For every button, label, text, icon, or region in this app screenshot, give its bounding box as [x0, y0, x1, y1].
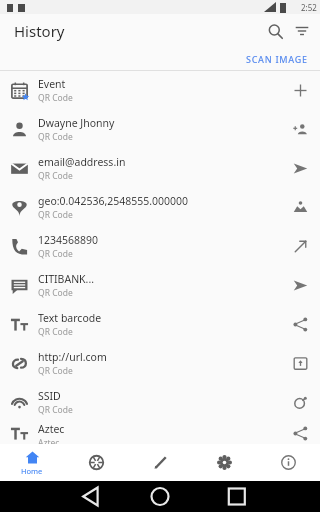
button[interactable]: PLUS	[280, 71, 320, 110]
staticText: QR Code	[38, 92, 73, 104]
button[interactable]: email@address.in	[0, 149, 320, 188]
button[interactable]: SEND	[280, 149, 320, 188]
button[interactable]: WIFI_ACT	[280, 383, 320, 422]
staticText: Dwayne Jhonny	[38, 116, 115, 130]
staticText: QR Code	[38, 209, 73, 221]
staticText: QR Code	[38, 326, 73, 338]
staticText: geo:0.042536,2548555.000000	[38, 194, 189, 208]
button[interactable]: Text barcode	[0, 305, 320, 344]
button[interactable]: Dwayne Jhonny	[0, 110, 320, 149]
button[interactable]: 1234568890	[0, 227, 320, 266]
staticText: Aztec	[38, 437, 60, 444]
staticText: email@address.in	[38, 155, 126, 169]
staticText: QR Code	[38, 248, 73, 260]
staticText: Aztec	[38, 422, 65, 436]
button[interactable]: Event	[0, 71, 320, 110]
button[interactable]: SHARE	[280, 422, 320, 444]
button[interactable]: Tab	[128, 444, 192, 481]
button[interactable]: http://url.com	[0, 344, 320, 383]
button[interactable]: SCAN IMAGE	[234, 50, 320, 68]
staticText: http://url.com	[38, 350, 107, 364]
button[interactable]: SEND	[280, 266, 320, 305]
button[interactable]: Tab	[64, 444, 128, 481]
staticText: QR Code	[38, 404, 73, 416]
staticText: History	[14, 21, 260, 41]
button[interactable]: ARROW	[280, 227, 320, 266]
button[interactable]: geo:0.042536,2548555.000000	[0, 188, 320, 227]
button[interactable]: SHARE	[280, 305, 320, 344]
button[interactable]: Home	[0, 444, 64, 481]
staticText: QR Code	[38, 287, 73, 299]
staticText: 1234568890	[38, 233, 99, 247]
staticText: 2:52	[301, 2, 317, 13]
button[interactable]: OPEN	[280, 344, 320, 383]
button[interactable]: Tab	[192, 444, 256, 481]
staticText: SSID	[38, 389, 61, 403]
staticText: SCAN IMAGE	[246, 53, 308, 65]
staticText: QR Code	[38, 131, 73, 143]
button[interactable]: CITIBANK...	[0, 266, 320, 305]
button[interactable]: ADD_PERSON	[280, 110, 320, 149]
button[interactable]: MAP	[280, 188, 320, 227]
staticText: QR Code	[38, 365, 73, 377]
button[interactable]: SSID	[0, 383, 320, 422]
button[interactable]: Aztec	[0, 422, 320, 444]
button[interactable]: Filter	[290, 16, 314, 46]
staticText: QR Code	[38, 170, 73, 182]
staticText: Text barcode	[38, 311, 102, 325]
button[interactable]: Search	[260, 16, 290, 46]
staticText: Home	[21, 466, 43, 476]
staticText: Event	[38, 77, 66, 91]
staticText: CITIBANK...	[38, 272, 95, 286]
button[interactable]: Tab	[256, 444, 320, 481]
